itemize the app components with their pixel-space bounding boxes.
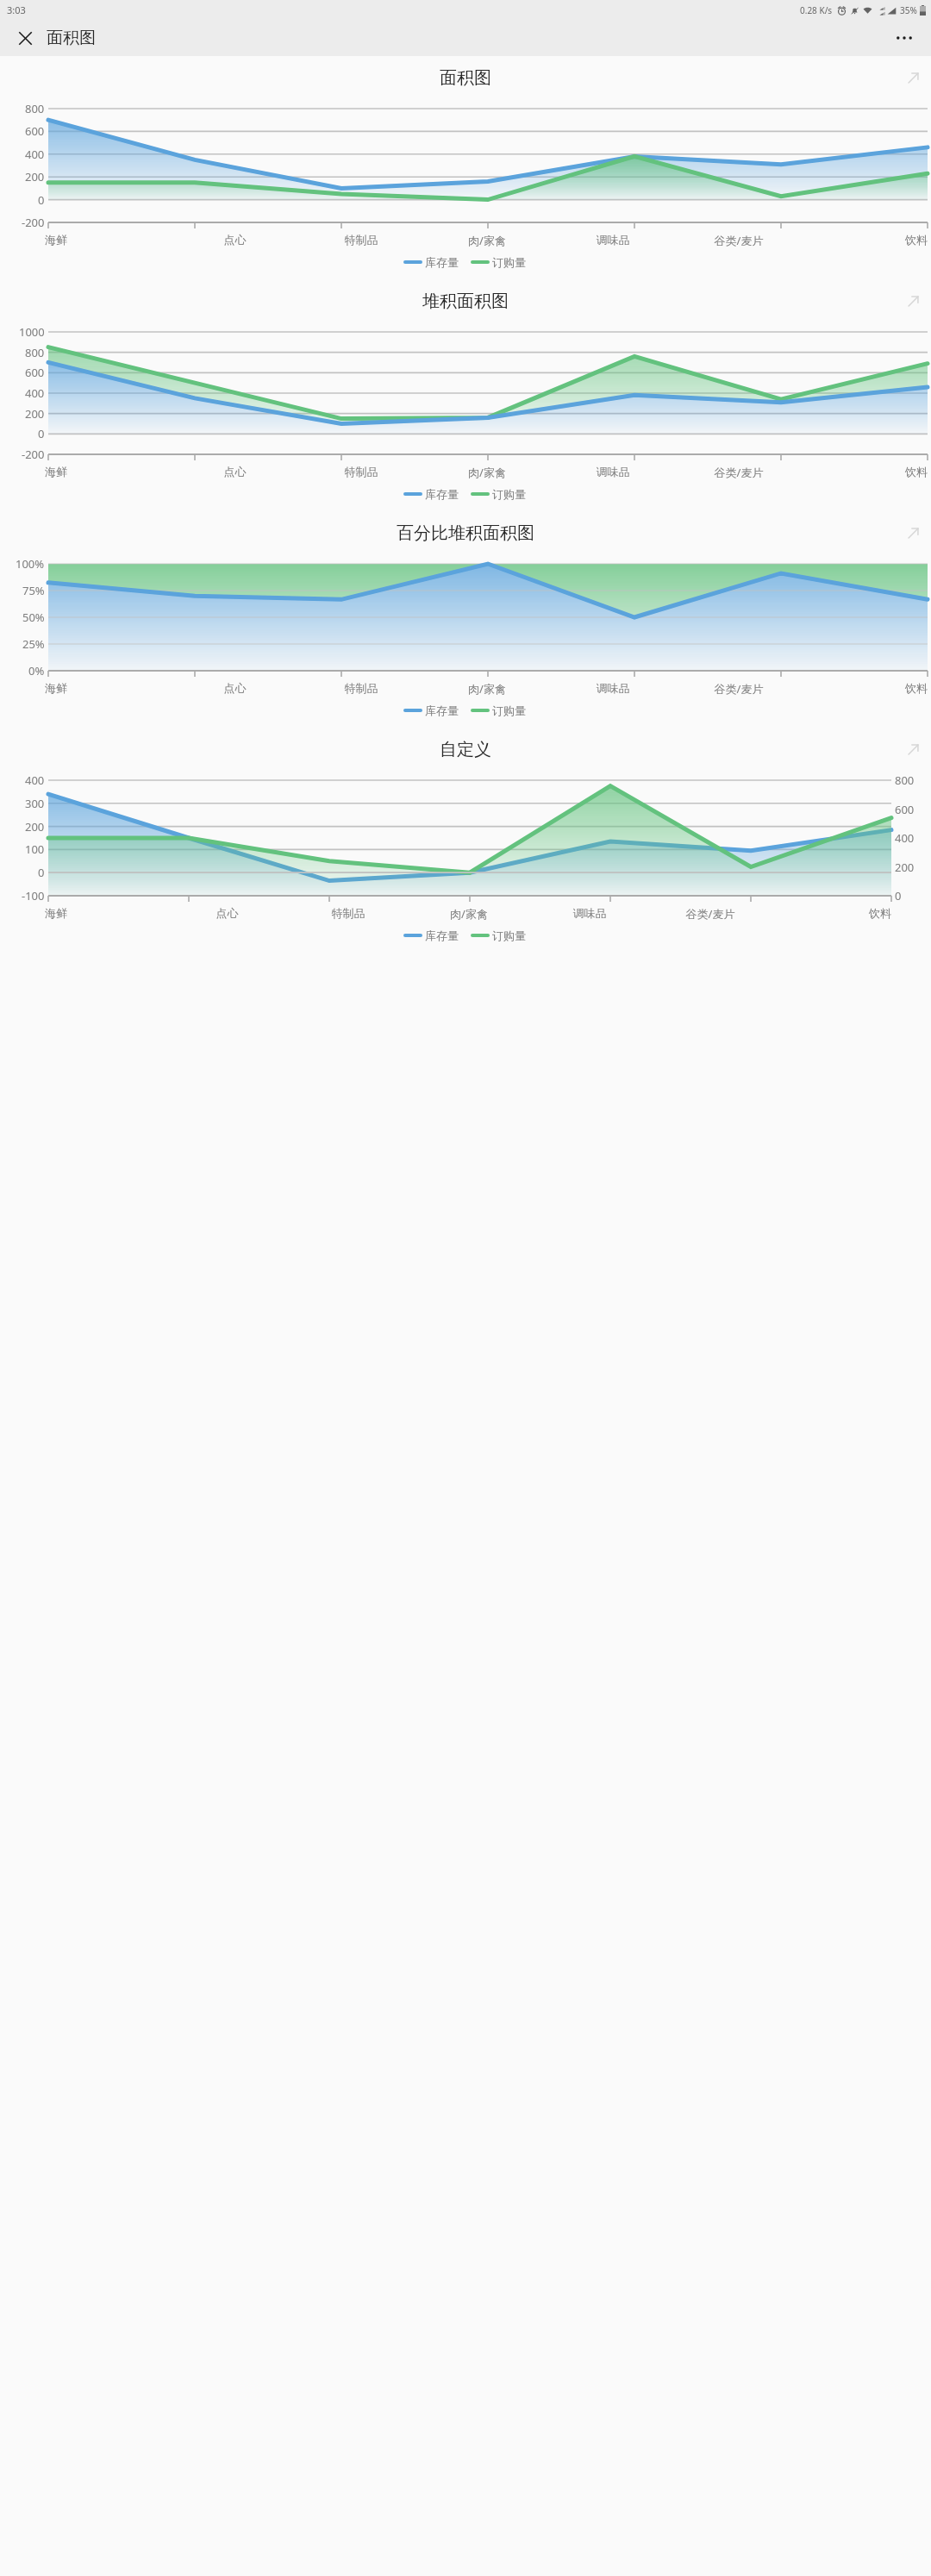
staticText: 调味品 xyxy=(550,465,676,478)
staticText: 百分比堆积面积图 xyxy=(397,522,534,544)
staticText: 3:03 xyxy=(7,3,26,16)
button[interactable]: Expand chart xyxy=(900,736,926,762)
staticText: 调味品 xyxy=(529,906,650,920)
staticText: 600 xyxy=(25,123,45,139)
button[interactable]: 库存量 xyxy=(405,255,459,269)
button[interactable]: 订购量 xyxy=(472,487,526,501)
staticText: 35% xyxy=(900,4,917,16)
staticText: 0% xyxy=(28,663,45,678)
button[interactable]: 库存量 xyxy=(405,487,459,501)
staticText: 特制品 xyxy=(288,906,409,920)
staticText: 800 xyxy=(895,772,915,788)
staticText: 0 xyxy=(38,192,45,208)
staticText: 0 xyxy=(38,865,45,880)
staticText: 堆积面积图 xyxy=(422,291,509,312)
staticText: 1000 xyxy=(19,324,45,340)
button[interactable]: 订购量 xyxy=(472,928,526,942)
button[interactable]: 订购量 xyxy=(472,255,526,269)
button[interactable]: Expand chart xyxy=(900,65,926,91)
staticText: 海鲜 xyxy=(45,906,166,920)
staticText: 特制品 xyxy=(298,233,424,247)
button[interactable]: More options xyxy=(890,23,919,53)
staticText: 0 xyxy=(38,426,45,441)
staticText: 饮料 xyxy=(802,681,928,695)
button[interactable]: Close xyxy=(12,25,38,51)
staticText: 200 xyxy=(25,819,45,835)
staticText: 库存量 xyxy=(425,255,459,269)
staticText: 点心 xyxy=(172,681,298,695)
staticText: 肉/家禽 xyxy=(409,906,529,922)
staticText: 400 xyxy=(25,772,45,788)
staticText: 200 xyxy=(895,860,915,875)
staticText: 库存量 xyxy=(425,928,459,942)
staticText: 调味品 xyxy=(550,681,676,695)
staticText: 点心 xyxy=(172,465,298,478)
staticText: 订购量 xyxy=(492,487,526,501)
staticText: 谷类/麦片 xyxy=(676,465,802,480)
staticText: 100 xyxy=(25,841,45,857)
staticText: 200 xyxy=(25,169,45,184)
staticText: 25% xyxy=(22,636,45,652)
staticText: 800 xyxy=(25,345,45,360)
staticText: 库存量 xyxy=(425,487,459,501)
staticText: 点心 xyxy=(172,233,298,247)
staticText: 300 xyxy=(25,796,45,811)
staticText: -200 xyxy=(22,215,45,230)
staticText: 600 xyxy=(25,365,45,380)
staticText: 600 xyxy=(895,802,915,817)
staticText: 库存量 xyxy=(425,703,459,717)
staticText: 自定义 xyxy=(440,739,491,760)
staticText: 面积图 xyxy=(440,67,491,89)
staticText: 肉/家禽 xyxy=(424,681,550,697)
button[interactable]: Expand chart xyxy=(900,520,926,546)
staticText: -200 xyxy=(22,447,45,462)
staticText: 海鲜 xyxy=(45,233,172,247)
staticText: 400 xyxy=(895,830,915,846)
staticText: 200 xyxy=(25,406,45,422)
staticText: 订购量 xyxy=(492,255,526,269)
staticText: 特制品 xyxy=(298,465,424,478)
staticText: 饮料 xyxy=(802,233,928,247)
staticText: 400 xyxy=(25,147,45,162)
button[interactable]: 库存量 xyxy=(405,703,459,717)
staticText: 海鲜 xyxy=(45,465,172,478)
staticText: 100% xyxy=(16,556,45,572)
staticText: 800 xyxy=(25,101,45,116)
staticText: 0.28 K/s xyxy=(800,4,833,16)
staticText: 75% xyxy=(22,583,45,598)
staticText: 订购量 xyxy=(492,928,526,942)
staticText: 谷类/麦片 xyxy=(650,906,771,922)
staticText: 特制品 xyxy=(298,681,424,695)
button[interactable]: 库存量 xyxy=(405,928,459,942)
staticText: 调味品 xyxy=(550,233,676,247)
staticText: 面积图 xyxy=(47,28,96,48)
button[interactable]: Expand chart xyxy=(900,288,926,314)
staticText: 谷类/麦片 xyxy=(676,233,802,248)
staticText: 谷类/麦片 xyxy=(676,681,802,697)
staticText: 肉/家禽 xyxy=(424,465,550,480)
staticText: 饮料 xyxy=(802,465,928,478)
staticText: 点心 xyxy=(166,906,288,920)
staticText: 0 xyxy=(895,888,902,903)
staticText: 50% xyxy=(22,610,45,625)
staticText: 订购量 xyxy=(492,703,526,717)
staticText: -100 xyxy=(22,888,45,903)
staticText: 海鲜 xyxy=(45,681,172,695)
staticText: 肉/家禽 xyxy=(424,233,550,248)
staticText: 400 xyxy=(25,385,45,401)
button[interactable]: 订购量 xyxy=(472,703,526,717)
staticText: 饮料 xyxy=(771,906,891,920)
